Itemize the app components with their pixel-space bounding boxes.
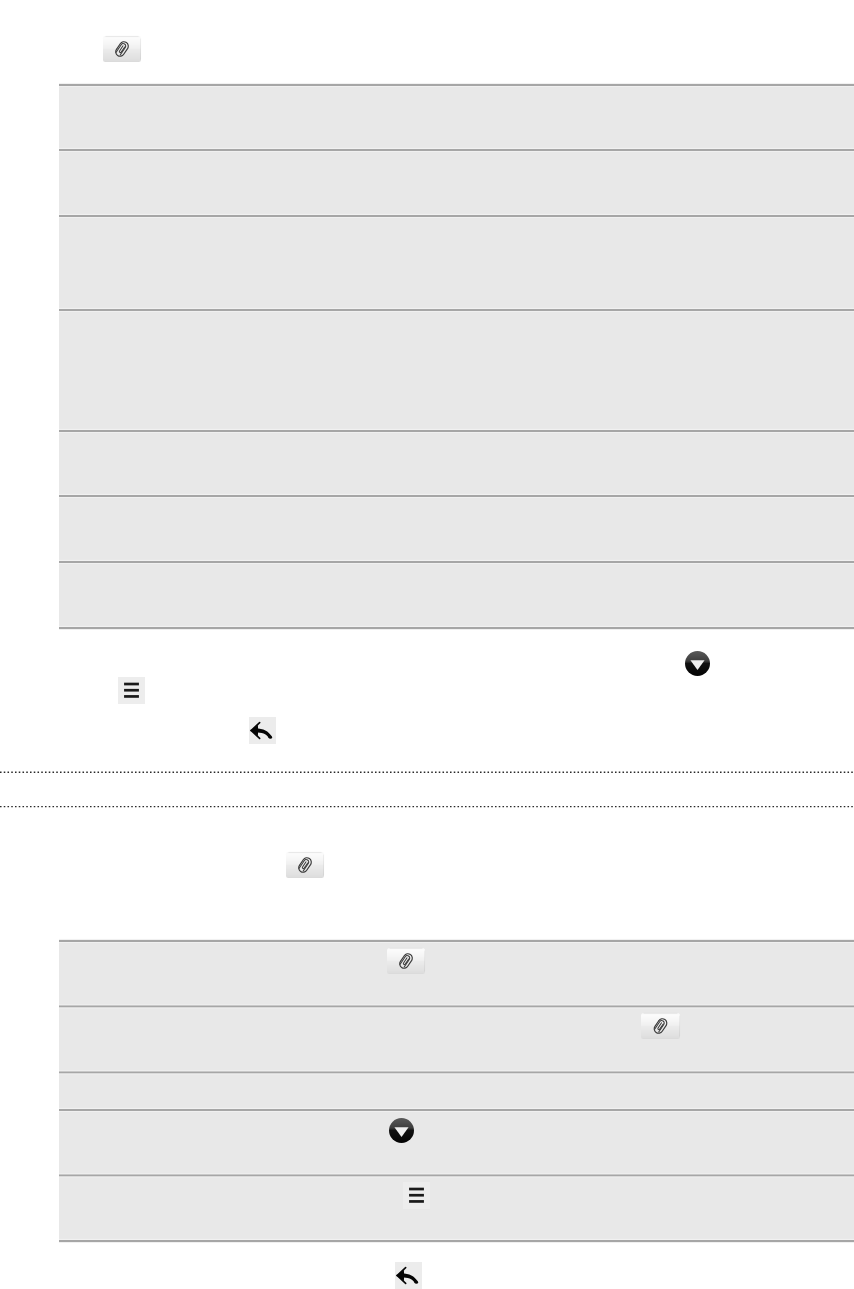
button[interactable]: Attach file <box>387 948 425 974</box>
button[interactable]: Back <box>395 1262 422 1289</box>
button[interactable]: Attach file <box>103 36 141 62</box>
button[interactable]: Back <box>249 717 276 744</box>
button[interactable]: Show more <box>389 1118 414 1143</box>
button[interactable]: Menu <box>118 677 145 704</box>
button[interactable]: Menu <box>403 1182 430 1209</box>
button[interactable]: Show more <box>685 651 710 676</box>
button[interactable]: Attach file <box>641 1013 680 1039</box>
button[interactable]: Attach file <box>286 852 324 878</box>
